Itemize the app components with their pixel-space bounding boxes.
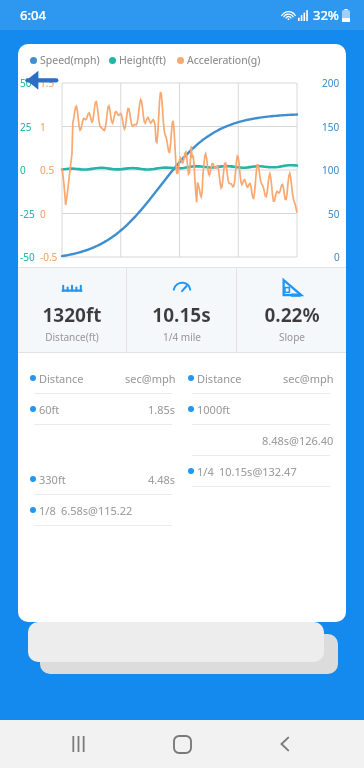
button[interactable]: Back — [24, 66, 58, 100]
staticText: Distance(ft) — [45, 330, 99, 344]
staticText: 6:04 — [20, 6, 46, 24]
staticText: 1/8 — [39, 503, 56, 518]
button[interactable]: 60ft — [28, 394, 178, 425]
staticText: 330ft — [39, 472, 66, 487]
button[interactable]: Distance — [28, 363, 178, 394]
staticText: Slope — [279, 330, 305, 344]
button[interactable]: 1/8 — [28, 495, 178, 526]
button[interactable]: Home — [158, 720, 206, 768]
button[interactable]: 1320ft — [18, 267, 126, 353]
staticText: 1.5 — [40, 76, 55, 90]
button[interactable]: 330ft — [28, 464, 178, 495]
staticText: 100 — [322, 163, 340, 177]
staticText: Height(ft) — [119, 53, 166, 67]
staticText: 60ft — [39, 402, 60, 417]
staticText: -0.5 — [40, 250, 58, 264]
staticText: 200 — [322, 76, 340, 90]
button[interactable]: Recent apps — [55, 720, 103, 768]
staticText: 50 — [328, 207, 340, 221]
staticText: 1320ft — [42, 302, 102, 328]
staticText: 0 — [20, 163, 26, 177]
staticText: 0.5 — [40, 163, 55, 177]
staticText: 6.58s@115.22 — [61, 503, 133, 518]
staticText: 25 — [20, 120, 32, 134]
staticText: sec@mph — [283, 371, 334, 386]
staticText: 1/4 mile — [163, 330, 201, 344]
staticText: Speed(mph) — [40, 53, 100, 67]
staticText: 1000ft — [197, 402, 230, 417]
button[interactable]: 0.22% — [237, 267, 346, 353]
staticText: sec@mph — [125, 371, 176, 386]
staticText: -25 — [20, 207, 35, 221]
button[interactable]: 10.15s — [127, 267, 236, 353]
button[interactable]: 1/4 — [186, 456, 336, 487]
staticText: 150 — [322, 120, 340, 134]
staticText: 1 — [40, 120, 46, 134]
staticText: 10.15s@132.47 — [219, 464, 297, 479]
staticText: Distance — [39, 371, 84, 386]
staticText: 0 — [40, 207, 46, 221]
button[interactable]: Back — [261, 720, 309, 768]
button[interactable]: 1000ft — [186, 394, 336, 425]
staticText: 0 — [334, 250, 340, 264]
staticText: 8.48s@126.40 — [262, 433, 334, 448]
button[interactable]: 8.48s@126.40 — [186, 425, 336, 456]
staticText: 4.48s — [148, 472, 176, 487]
staticText: Distance — [197, 371, 242, 386]
staticText: 1.85s — [148, 402, 176, 417]
staticText: 0.22% — [264, 302, 320, 328]
staticText: -50 — [20, 250, 35, 264]
staticText: 50 — [20, 76, 32, 90]
staticText: 32% — [313, 6, 339, 24]
staticText: Acceleration(g) — [187, 53, 261, 67]
staticText: 10.15s — [152, 302, 211, 328]
button[interactable]: Distance — [186, 363, 336, 394]
staticText: 1/4 — [197, 464, 214, 479]
